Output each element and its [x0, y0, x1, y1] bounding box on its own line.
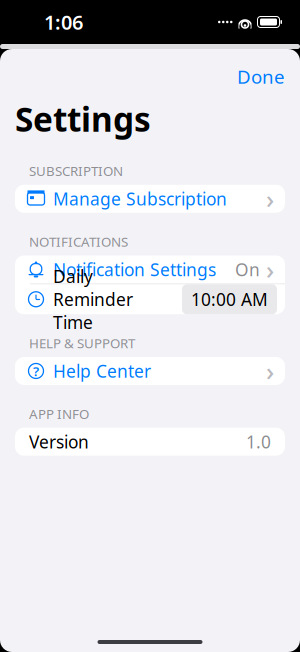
- staticText: Notification Settings: [53, 258, 216, 281]
- button[interactable]: Notification Settings: [15, 255, 285, 283]
- staticText: 10:00 AM: [191, 288, 268, 311]
- staticText: Daily Reminder Time: [53, 265, 133, 334]
- staticText: APP INFO: [29, 405, 89, 423]
- staticText: Settings: [15, 97, 151, 141]
- button[interactable]: ?: [15, 357, 285, 385]
- staticText: SUBSCRIPTION: [29, 162, 123, 180]
- staticText: ›: [266, 253, 274, 286]
- staticText: 1.0: [246, 430, 271, 453]
- staticText: ?: [33, 362, 39, 380]
- staticText: ›: [266, 182, 274, 215]
- staticText: HELP & SUPPORT: [29, 334, 135, 352]
- staticText: Manage Subscription: [53, 187, 227, 210]
- staticText: Version: [29, 430, 89, 453]
- staticText: ›: [266, 354, 274, 388]
- staticText: Help Center: [53, 359, 151, 382]
- staticText: Done: [237, 64, 285, 89]
- button[interactable]: Manage Subscription: [15, 185, 285, 213]
- button[interactable]: Daily Reminder Time: [15, 284, 285, 314]
- button[interactable]: Done: [231, 58, 291, 95]
- staticText: NOTIFICATIONS: [29, 233, 128, 250]
- staticText: On: [235, 258, 260, 281]
- staticText: 1:06: [44, 9, 83, 35]
